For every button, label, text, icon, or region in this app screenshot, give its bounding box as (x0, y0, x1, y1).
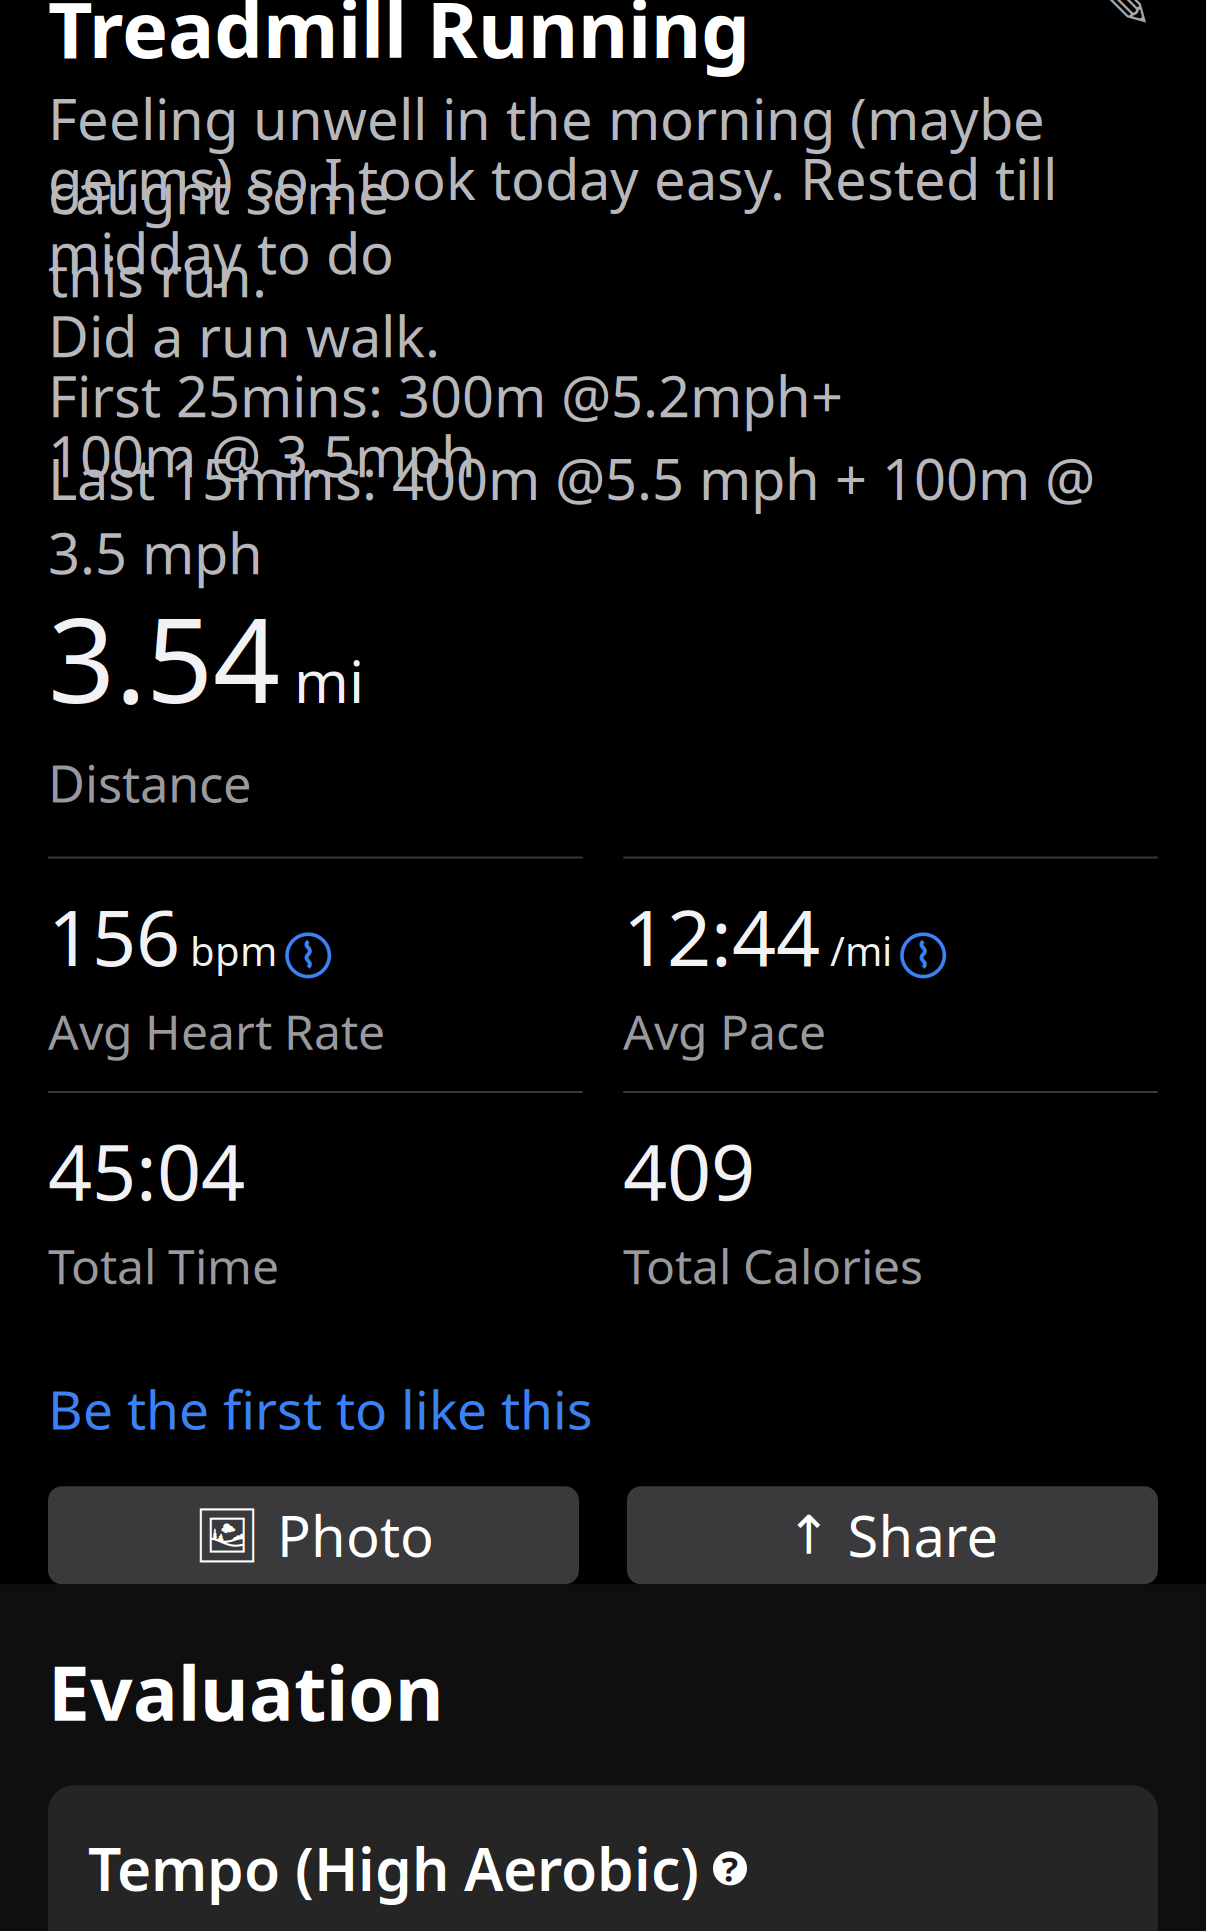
staticText: Did a run walk. (48, 298, 440, 373)
staticText: /mi (830, 924, 892, 977)
button[interactable]: Be the first to like this (48, 1373, 1158, 1444)
staticText: Last 15mins: 400m @5.5 mph + 100m @ 3.5 … (48, 441, 1095, 590)
staticText: Tempo (High Aerobic) (88, 1829, 699, 1907)
staticText: Share (847, 1498, 998, 1572)
staticText: mi (294, 641, 364, 719)
staticText: ? (721, 1845, 738, 1891)
button[interactable]: Edit (1098, 0, 1158, 37)
staticText: ⌇ (915, 936, 932, 975)
staticText: 45:04 (48, 1119, 245, 1222)
staticText: 3.54 (48, 579, 280, 735)
staticText: 156 (48, 884, 180, 987)
staticText: 100m @ 3.5mph (48, 418, 476, 493)
staticText: ⌇ (300, 936, 317, 975)
staticText: 12:44 (623, 884, 820, 987)
staticText: bpm (190, 924, 277, 977)
staticText: ✎ (1103, 0, 1152, 40)
staticText: Be the first to like this (48, 1373, 593, 1444)
staticText: 🖼 (193, 1505, 261, 1566)
staticText: this run. (48, 238, 267, 313)
button[interactable]: ↑ (627, 1486, 1158, 1584)
staticText: Total Time (48, 1234, 279, 1297)
staticText: Avg Pace (623, 999, 826, 1063)
staticText: Photo (277, 1498, 434, 1572)
staticText: Total Calories (623, 1234, 923, 1297)
staticText: Treadmill Running (48, 0, 750, 79)
staticText: ↑ (786, 1505, 831, 1565)
staticText: First 25mins: 300m @5.2mph+ (48, 358, 843, 433)
staticText: Evaluation (48, 1642, 444, 1741)
staticText: Feeling unwell in the morning (maybe cau… (48, 81, 1045, 230)
button[interactable]: About primary benefit (713, 1851, 747, 1885)
staticText: Avg Heart Rate (48, 999, 385, 1063)
staticText: 409 (623, 1119, 755, 1222)
staticText: germs) so I took today easy. Rested till… (48, 141, 1057, 290)
button[interactable]: 🖼 (48, 1486, 579, 1584)
staticText: Distance (48, 749, 252, 817)
